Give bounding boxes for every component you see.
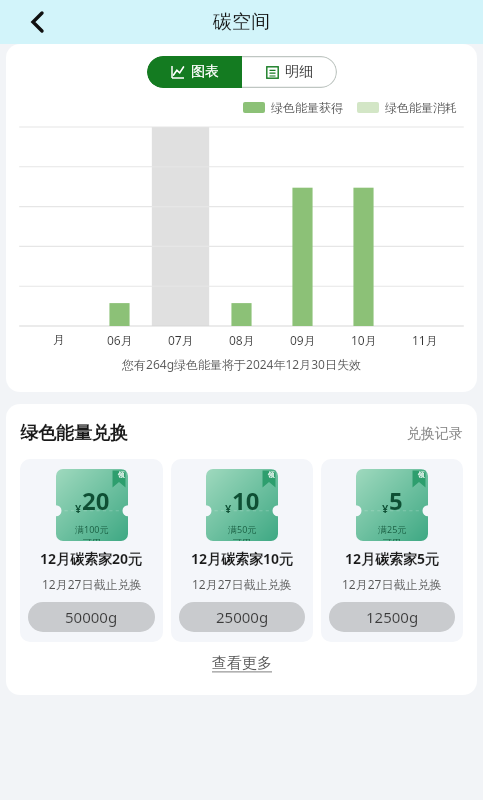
staticText: 11月 [412, 332, 438, 348]
staticText: 月 [53, 332, 65, 347]
button[interactable]: 查看更多 [20, 654, 463, 673]
staticText: 满100元 [75, 523, 109, 535]
button[interactable]: 兑换记录 [407, 425, 463, 443]
staticText: 兑换记录 [407, 425, 463, 443]
button[interactable]: 12500g [329, 602, 455, 632]
staticText: 满25元 [378, 523, 407, 535]
staticText: 50000g [65, 607, 118, 627]
staticText: 明细 [285, 63, 313, 81]
staticText: 12月27日截止兑换 [192, 576, 292, 592]
staticText: 20 [82, 484, 110, 517]
button[interactable]: 25000g [179, 602, 305, 632]
staticText: 12月碳索家5元 [345, 549, 440, 568]
staticText: 5 [389, 484, 403, 517]
staticText: 10月 [351, 332, 377, 348]
staticText: 08月 [229, 332, 255, 348]
staticText: 领 [418, 470, 425, 479]
staticText: 12月碳索家10元 [191, 549, 294, 568]
staticText: 满50元 [228, 523, 257, 535]
button[interactable]: ¥ [171, 459, 313, 642]
button[interactable]: 图表 [147, 56, 242, 88]
staticText: 07月 [168, 332, 194, 348]
button[interactable]: ¥ [20, 459, 163, 642]
staticText: 您有264g绿色能量将于2024年12月30日失效 [6, 356, 477, 372]
staticText: 可用 [83, 537, 101, 541]
staticText: 绿色能量兑换 [20, 422, 128, 445]
staticText: ¥ [75, 501, 82, 516]
staticText: 图表 [191, 63, 219, 81]
staticText: 12月碳索家20元 [40, 549, 143, 568]
staticText: 12月27日截止兑换 [42, 576, 142, 592]
button[interactable]: 50000g [28, 602, 155, 632]
staticText: 绿色能量消耗 [385, 100, 457, 115]
staticText: 可用 [233, 537, 251, 541]
staticText: 领 [268, 470, 275, 479]
button[interactable]: ¥ [321, 459, 463, 642]
staticText: 12月27日截止兑换 [342, 576, 442, 592]
staticText: 可用 [383, 537, 401, 541]
staticText: 查看更多 [212, 654, 272, 673]
staticText: 06月 [107, 332, 133, 348]
staticText: ¥ [382, 501, 389, 516]
staticText: 25000g [216, 607, 269, 627]
staticText: 10 [232, 484, 260, 517]
staticText: 09月 [290, 332, 316, 348]
staticText: 12500g [366, 607, 419, 627]
staticText: 碳空间 [213, 10, 270, 34]
button[interactable]: 明细 [242, 56, 337, 88]
button[interactable]: Back [20, 5, 54, 39]
staticText: 领 [118, 470, 125, 479]
staticText: ¥ [225, 501, 232, 516]
staticText: 绿色能量获得 [271, 100, 343, 115]
